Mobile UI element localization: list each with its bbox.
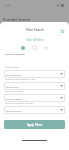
- button[interactable]: Location filter: [21, 46, 25, 50]
- button[interactable]: Select Service: [6, 106, 63, 114]
- button[interactable]: Select Care: [6, 82, 63, 90]
- staticText: Select County: [6, 73, 22, 76]
- staticText: 9:41: [5, 4, 11, 8]
- button[interactable]: Select Provider: [6, 94, 63, 102]
- staticText: Filter by provider: [5, 90, 24, 93]
- staticText: Select Service: [6, 109, 22, 112]
- staticText: Provider Search: [3, 17, 30, 22]
- staticText: Select Provider: [6, 97, 23, 100]
- staticText: Search by categories of care: [5, 78, 36, 81]
- button[interactable]: Category filter: [32, 45, 37, 50]
- staticText: Search by Location: [5, 53, 25, 56]
- staticText: Filter Search: [26, 28, 44, 32]
- staticText: Filter by specialist services: [5, 102, 34, 105]
- button[interactable]: Select County: [6, 70, 63, 78]
- staticText: Select Care: [6, 85, 19, 88]
- button[interactable]: Apply Filters: [4, 120, 65, 129]
- button[interactable]: Close filters: [58, 27, 67, 36]
- staticText: County name: [5, 66, 20, 69]
- staticText: Apply Filters: [27, 123, 43, 127]
- button[interactable]: Clear all filters: [26, 38, 44, 42]
- button[interactable]: Service filter: [44, 46, 48, 50]
